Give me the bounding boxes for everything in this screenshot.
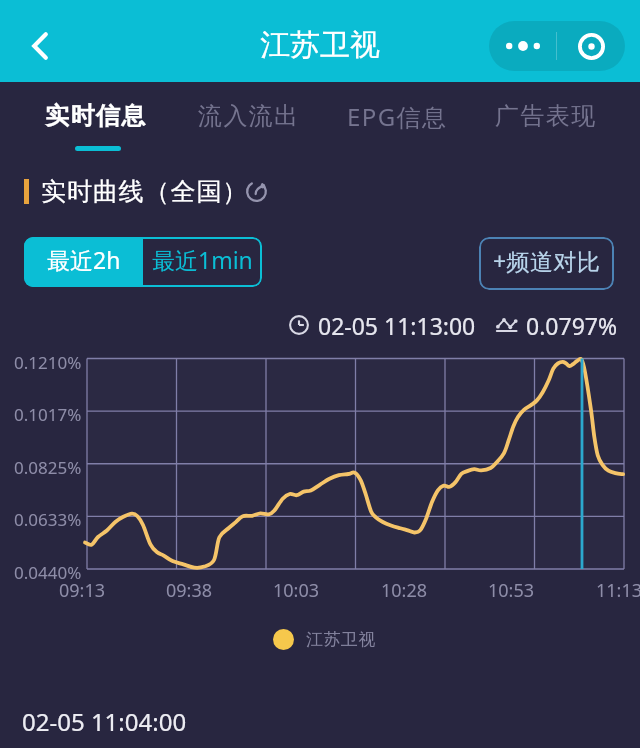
staticText: +频道对比 xyxy=(493,245,601,276)
staticText: 0.0440% xyxy=(14,561,82,584)
button[interactable]: 最近2h xyxy=(24,237,143,287)
button[interactable]: 流入流出 xyxy=(174,82,324,154)
staticText: 10:03 xyxy=(273,578,320,603)
staticText: 江苏卫视 xyxy=(260,26,380,64)
button[interactable]: More options xyxy=(489,21,556,71)
staticText: 0.0825% xyxy=(14,456,82,479)
staticText: 02-05 11:04:00 xyxy=(22,705,187,738)
button[interactable]: 实时信息 xyxy=(21,82,171,154)
staticText: 0.1017% xyxy=(14,403,82,426)
staticText: 11:13 xyxy=(596,578,640,603)
staticText: 江苏卫视 xyxy=(306,629,376,650)
staticText: EPG信息 xyxy=(347,100,448,133)
staticText: 10:28 xyxy=(381,578,428,603)
button[interactable]: +频道对比 xyxy=(479,237,614,290)
staticText: 0.1210% xyxy=(14,351,82,374)
staticText: 最近2h xyxy=(47,244,121,275)
button[interactable]: Refresh xyxy=(239,174,273,208)
button[interactable]: EPG信息 xyxy=(322,82,472,154)
staticText: 02-05 11:13:00 xyxy=(318,310,476,341)
staticText: 最近1min xyxy=(152,244,253,275)
staticText: 10:53 xyxy=(488,578,535,603)
staticText: 实时曲线（全国） xyxy=(41,176,249,207)
staticText: 广告表现 xyxy=(495,101,597,131)
button[interactable]: 最近1min xyxy=(143,237,262,287)
button[interactable]: Back xyxy=(12,18,68,74)
staticText: 流入流出 xyxy=(198,101,300,131)
staticText: 09:38 xyxy=(166,578,213,603)
staticText: 实时信息 xyxy=(45,101,147,131)
staticText: 09:13 xyxy=(59,578,106,603)
button[interactable]: Locate xyxy=(557,21,625,71)
staticText: 0.0797% xyxy=(526,310,618,341)
staticText: 0.0633% xyxy=(14,508,82,531)
button[interactable]: 广告表现 xyxy=(471,82,621,154)
